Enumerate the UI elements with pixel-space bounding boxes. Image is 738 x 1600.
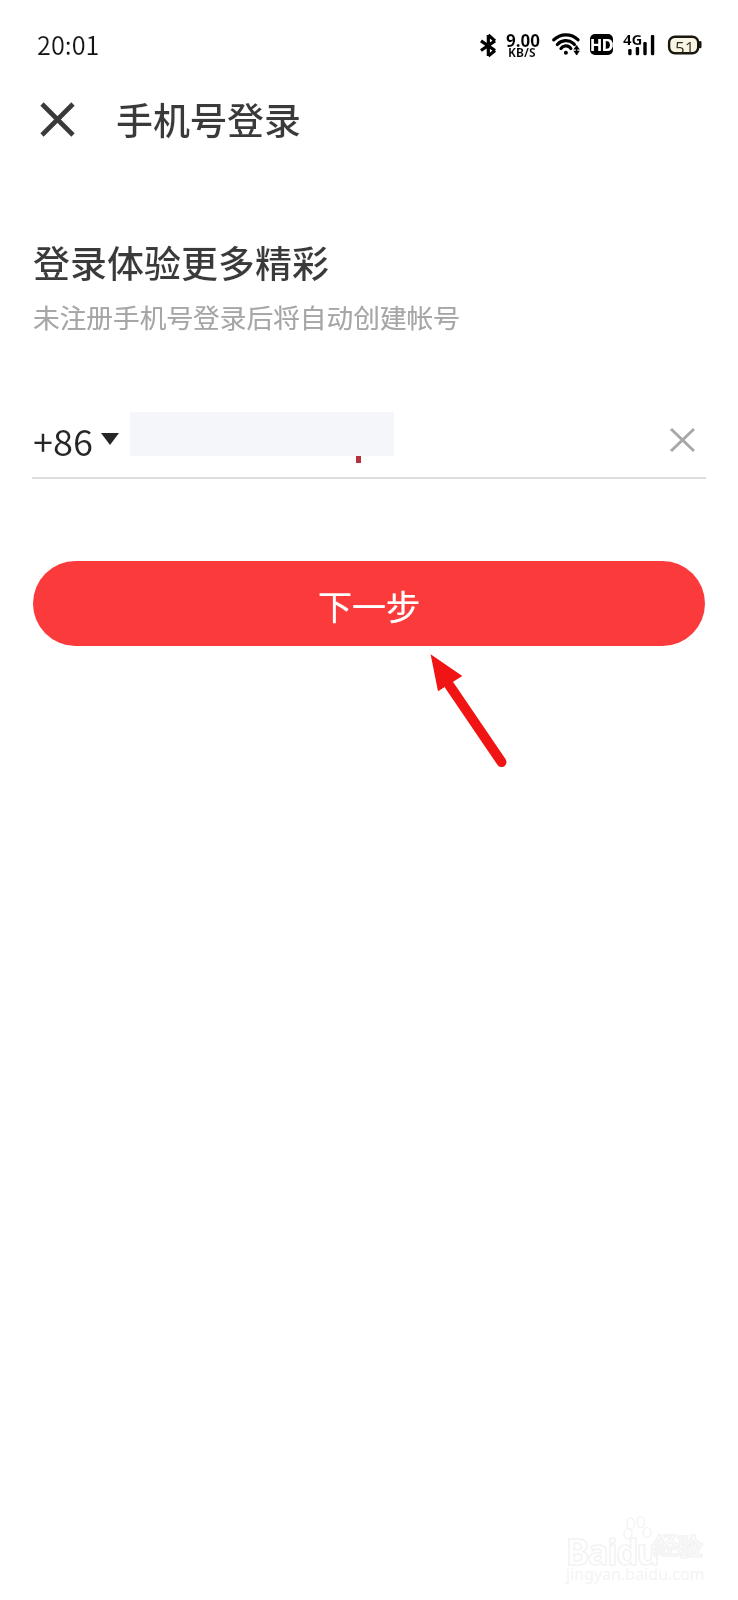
button[interactable]: Close <box>25 87 89 151</box>
staticText: HD <box>590 34 613 55</box>
button[interactable]: Clear <box>654 412 711 468</box>
staticText: 下一步 <box>318 581 420 630</box>
staticText: 20:01 <box>37 26 100 62</box>
staticText: 9.00 <box>506 29 540 52</box>
staticText: +86 <box>33 414 93 466</box>
staticText: 未注册手机号登录后将自动创建帐号 <box>33 297 460 336</box>
button[interactable]: 下一步 <box>33 561 705 646</box>
staticText: 4G <box>623 29 643 49</box>
staticText: 经验 <box>654 1532 702 1562</box>
staticText: jingyan.baidu.com <box>566 1563 705 1585</box>
button[interactable]: Country code +86 <box>28 410 124 468</box>
staticText: 登录体验更多精彩 <box>33 235 329 289</box>
staticText: 51 <box>675 36 695 55</box>
staticText: 手机号登录 <box>116 92 301 146</box>
staticText: KB/S <box>508 44 536 60</box>
staticText: Baidu <box>566 1528 659 1576</box>
